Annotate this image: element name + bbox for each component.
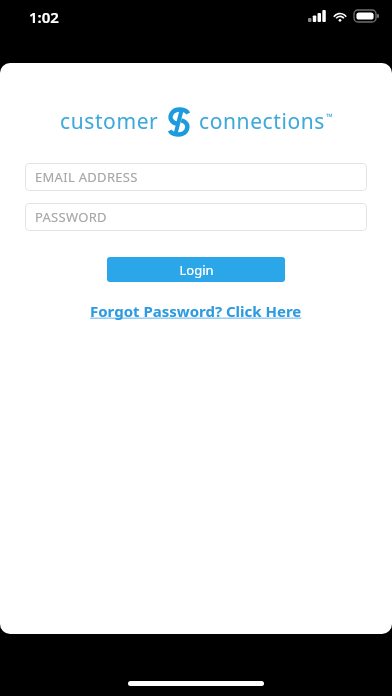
staticText: Login (179, 261, 214, 279)
staticText: Forgot Password? Click Here (90, 301, 302, 321)
staticText: ™ (326, 110, 333, 122)
staticText: 1:02 (29, 7, 59, 27)
button[interactable]: Forgot Password? Click Here (86, 299, 306, 323)
staticText: connections (199, 107, 326, 136)
staticText: customer (60, 107, 159, 136)
button[interactable]: EMAIL ADDRESS (25, 163, 367, 191)
button[interactable]: Login (107, 257, 285, 282)
button[interactable]: PASSWORD (25, 203, 367, 231)
staticText: EMAIL ADDRESS (35, 168, 138, 186)
staticText: PASSWORD (35, 208, 107, 226)
